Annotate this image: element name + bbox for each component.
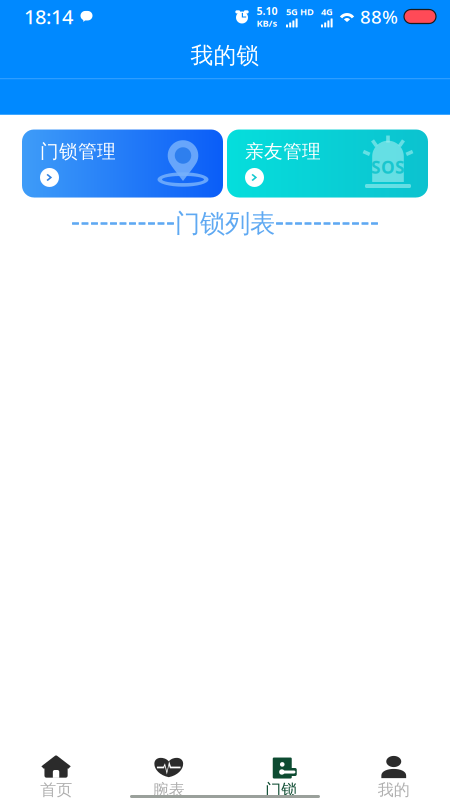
staticText: 门锁 <box>265 780 297 800</box>
staticText: SOS <box>371 155 405 178</box>
staticText: 门锁列表 <box>175 208 275 239</box>
staticText: 5.10 <box>256 4 277 18</box>
staticText: 亲友管理 <box>245 140 321 163</box>
button[interactable]: 我的 <box>337 749 450 800</box>
staticText: 18:14 <box>24 3 73 30</box>
staticText: 88% <box>360 4 398 29</box>
staticText: 我的 <box>378 780 410 800</box>
staticText: 腕表 <box>153 780 185 800</box>
button[interactable]: 首页 <box>0 749 112 800</box>
staticText: 5G HD <box>286 6 314 18</box>
staticText: 门锁管理 <box>40 140 116 163</box>
button[interactable]: 门锁 <box>225 749 337 800</box>
staticText: 首页 <box>40 780 72 800</box>
staticText: 4G <box>321 6 333 18</box>
staticText: KB/s <box>256 17 277 29</box>
button[interactable]: 腕表 <box>112 749 225 800</box>
button[interactable]: 门锁管理 <box>22 129 223 197</box>
button[interactable]: SOS <box>227 129 428 197</box>
staticText: 我的锁 <box>190 42 259 69</box>
button[interactable]: 我的锁 <box>0 33 450 78</box>
